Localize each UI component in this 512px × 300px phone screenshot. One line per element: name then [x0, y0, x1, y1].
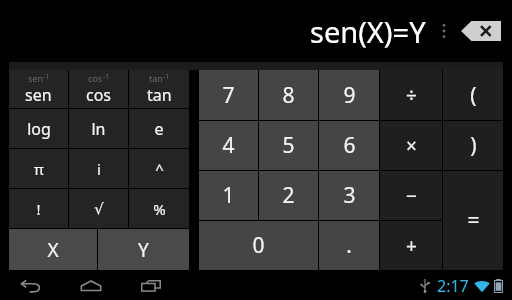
button[interactable]: i	[69, 149, 128, 188]
staticText: sen	[28, 72, 43, 84]
button[interactable]: Back	[10, 272, 52, 300]
staticText: sen	[25, 84, 52, 106]
staticText: !	[36, 199, 41, 219]
button[interactable]: cos	[69, 70, 128, 108]
staticText: -1	[43, 72, 50, 82]
button[interactable]: ^	[129, 149, 189, 188]
button[interactable]: =	[443, 171, 503, 270]
staticText: .	[346, 231, 352, 260]
button[interactable]: 4	[199, 121, 258, 170]
staticText: 9	[343, 81, 356, 110]
staticText: 6	[343, 131, 356, 160]
staticText: -1	[163, 72, 170, 82]
button[interactable]: Home	[70, 272, 112, 300]
button[interactable]: Recent apps	[130, 272, 172, 300]
staticText: 3	[343, 181, 356, 210]
button[interactable]: X	[9, 229, 97, 270]
button[interactable]: ×	[380, 121, 442, 170]
staticText: cos	[88, 72, 103, 84]
button[interactable]: π	[9, 149, 68, 188]
staticText: 4	[222, 131, 235, 160]
button[interactable]: .	[319, 221, 379, 270]
staticText: )	[470, 131, 477, 160]
button[interactable]: 3	[319, 171, 379, 220]
button[interactable]: 2	[259, 171, 318, 220]
button[interactable]: 8	[259, 70, 318, 120]
button[interactable]: ln	[69, 109, 128, 148]
staticText: 1	[222, 181, 235, 210]
staticText: log	[27, 118, 51, 140]
button[interactable]: log	[9, 109, 68, 148]
button[interactable]: !	[9, 189, 68, 228]
staticText: %	[153, 199, 166, 219]
staticText: 7	[222, 81, 235, 110]
staticText: √	[94, 200, 104, 217]
staticText: =	[467, 206, 480, 235]
button[interactable]: 0	[199, 221, 318, 270]
button[interactable]: sen	[9, 70, 68, 108]
button[interactable]: Backspace	[458, 14, 504, 48]
button[interactable]: ÷	[380, 70, 442, 120]
staticText: ln	[91, 118, 106, 140]
button[interactable]: −	[380, 171, 442, 220]
button[interactable]: tan	[129, 70, 189, 108]
staticText: tan	[149, 72, 163, 84]
staticText: π	[34, 159, 44, 179]
staticText: cos	[86, 84, 112, 106]
button[interactable]: 6	[319, 121, 379, 170]
button[interactable]: Y	[98, 229, 189, 270]
staticText: Y	[138, 237, 149, 263]
button[interactable]: 9	[319, 70, 379, 120]
staticText: 2	[282, 181, 295, 210]
staticText: (	[470, 81, 477, 110]
staticText: 5	[282, 131, 295, 160]
staticText: ^	[155, 159, 164, 179]
button[interactable]: 7	[199, 70, 258, 120]
staticText: ÷	[406, 82, 417, 108]
staticText: tan	[147, 84, 172, 106]
staticText: X	[47, 237, 59, 263]
button[interactable]: +	[380, 221, 442, 270]
button[interactable]: (	[443, 70, 503, 120]
staticText: 2:17	[437, 275, 469, 297]
button[interactable]: %	[129, 189, 189, 228]
staticText: i	[97, 159, 101, 179]
button[interactable]: 1	[199, 171, 258, 220]
button[interactable]: More options	[436, 11, 452, 51]
staticText: sen(X)=Y	[310, 12, 426, 51]
button[interactable]: e	[129, 109, 189, 148]
staticText: +	[406, 233, 417, 259]
staticText: e	[154, 118, 164, 140]
staticText: -1	[103, 72, 110, 82]
staticText: 8	[282, 81, 295, 110]
staticText: 0	[252, 231, 265, 260]
button[interactable]: √	[69, 189, 128, 228]
button[interactable]: )	[443, 121, 503, 170]
staticText: −	[406, 183, 417, 209]
button[interactable]: 5	[259, 121, 318, 170]
staticText: ×	[406, 133, 417, 159]
